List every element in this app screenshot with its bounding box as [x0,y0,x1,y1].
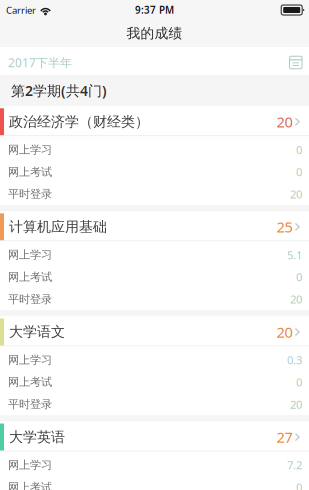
staticText: 平时登录 [8,397,52,411]
staticText: 平时登录 [8,292,52,306]
staticText: 计算机应用基础 [9,218,107,236]
staticText: 大学英语 [9,428,65,446]
staticText: 20 [290,292,302,307]
button[interactable]: 计算机应用基础 [0,211,309,241]
staticText: 0 [296,269,302,285]
staticText: 20 [276,322,292,342]
staticText: 27 [276,427,292,447]
staticText: 大学语文 [9,323,65,341]
staticText: 0 [296,480,302,490]
staticText: 网上学习 [8,458,52,472]
staticText: 网上考试 [8,165,52,179]
staticText: 网上考试 [8,480,52,490]
staticText: 0 [296,374,302,390]
button[interactable]: 2017下半年 [0,47,309,75]
staticText: 第2学期(共4门) [11,81,107,100]
staticText: 网上学习 [8,353,52,367]
staticText: 20 [290,186,302,202]
staticText: 20 [276,112,292,132]
staticText: 网上考试 [8,375,52,389]
staticText: 网上考试 [8,270,52,284]
staticText: 5.1 [287,247,302,262]
staticText: 我的成绩 [126,25,182,42]
staticText: 网上学习 [8,143,52,157]
staticText: 平时登录 [8,187,52,201]
staticText: 网上学习 [8,248,52,262]
staticText: 0 [296,142,302,157]
staticText: 25 [276,217,292,237]
staticText: 20 [290,397,302,412]
button[interactable]: 大学英语 [0,421,309,451]
button[interactable]: 大学语文 [0,316,309,346]
staticText: 2017下半年 [8,54,72,71]
staticText: 7.2 [287,457,302,473]
staticText: 政治经济学（财经类） [9,113,149,130]
staticText: 0.3 [287,352,302,368]
button[interactable]: 政治经济学（财经类） [0,106,309,135]
staticText: 0 [296,164,302,180]
staticText: Carrier [6,3,36,17]
staticText: 9:37 PM [135,3,174,17]
